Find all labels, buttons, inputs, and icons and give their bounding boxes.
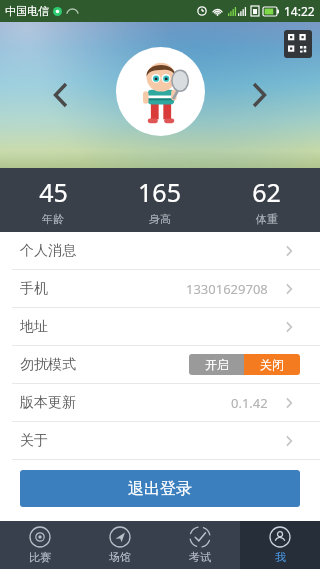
staticText: 地址 xyxy=(20,318,48,336)
staticText: 62 xyxy=(252,175,281,209)
staticText: 关于 xyxy=(20,432,48,450)
staticText: 14:22 xyxy=(284,3,315,19)
staticText: 勿扰模式 xyxy=(20,356,76,374)
button[interactable]: 头像 xyxy=(116,47,205,136)
staticText: 13301629708 xyxy=(186,280,268,298)
staticText: 我 xyxy=(275,550,286,564)
button[interactable]: 二维码 xyxy=(284,30,312,58)
button[interactable]: 开启 xyxy=(189,354,244,375)
staticText: 165 xyxy=(138,175,181,209)
button[interactable]: 62 xyxy=(213,175,320,226)
button[interactable]: 勿扰模式 xyxy=(0,346,320,383)
button[interactable]: 下一个 xyxy=(242,78,276,112)
button[interactable]: 手机 xyxy=(0,270,320,307)
button[interactable]: 关闭 xyxy=(244,354,300,375)
button[interactable]: 45 xyxy=(0,175,106,226)
staticText: 比赛 xyxy=(29,550,51,564)
staticText: 版本更新 xyxy=(20,394,76,412)
button[interactable]: 上一个 xyxy=(44,78,78,112)
staticText: 手机 xyxy=(20,280,48,298)
staticText: 体重 xyxy=(256,212,278,226)
button[interactable]: 退出登录 xyxy=(20,470,300,507)
staticText: 开启 xyxy=(205,357,229,372)
staticText: 年龄 xyxy=(42,212,64,226)
button[interactable]: 个人消息 xyxy=(0,232,320,269)
button[interactable]: 165 xyxy=(106,175,213,226)
staticText: 身高 xyxy=(149,212,171,226)
button[interactable]: 场馆 xyxy=(80,521,160,569)
button[interactable]: 地址 xyxy=(0,308,320,345)
staticText: 0.1.42 xyxy=(231,394,268,412)
staticText: 场馆 xyxy=(109,550,131,564)
staticText: 考试 xyxy=(189,550,211,564)
staticText: 关闭 xyxy=(260,357,284,372)
button[interactable]: 版本更新 xyxy=(0,384,320,421)
button[interactable]: 我 xyxy=(240,521,320,569)
staticText: 45 xyxy=(39,175,68,209)
button[interactable]: 关于 xyxy=(0,422,320,459)
button[interactable]: 考试 xyxy=(160,521,240,569)
staticText: 中国电信 xyxy=(5,4,49,18)
staticText: 退出登录 xyxy=(128,479,192,499)
button[interactable]: 比赛 xyxy=(0,521,80,569)
staticText: 个人消息 xyxy=(20,242,76,260)
